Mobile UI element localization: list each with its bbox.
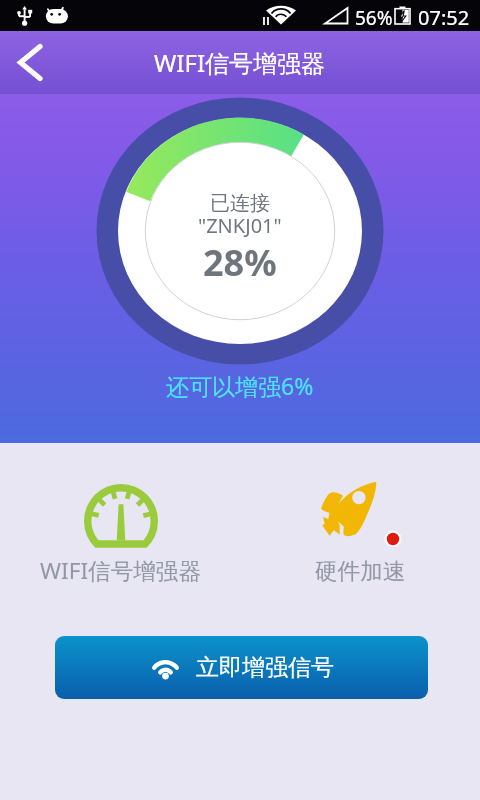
staticText: 硬件加速 [315,557,406,585]
staticText: WIFI信号增强器 [154,46,326,79]
button[interactable]: WIFI信号增强器 [20,470,220,590]
button[interactable]: 立即增强信号 [55,636,428,699]
staticText: 07:52 [418,4,470,31]
staticText: 56% [355,5,393,31]
button[interactable]: Back [6,31,58,94]
staticText: 28% [203,238,277,287]
staticText: 还可以增强6% [166,370,314,401]
staticText: 立即增强信号 [196,653,334,682]
staticText: WIFI信号增强器 [40,555,202,586]
other: 硬件加速 [319,479,379,539]
staticText: 已连接 [210,191,270,216]
staticText: "ZNKJ01" [198,212,282,239]
other: WIFI信号增强器 [84,484,158,548]
button[interactable]: 硬件加速 [260,470,460,590]
